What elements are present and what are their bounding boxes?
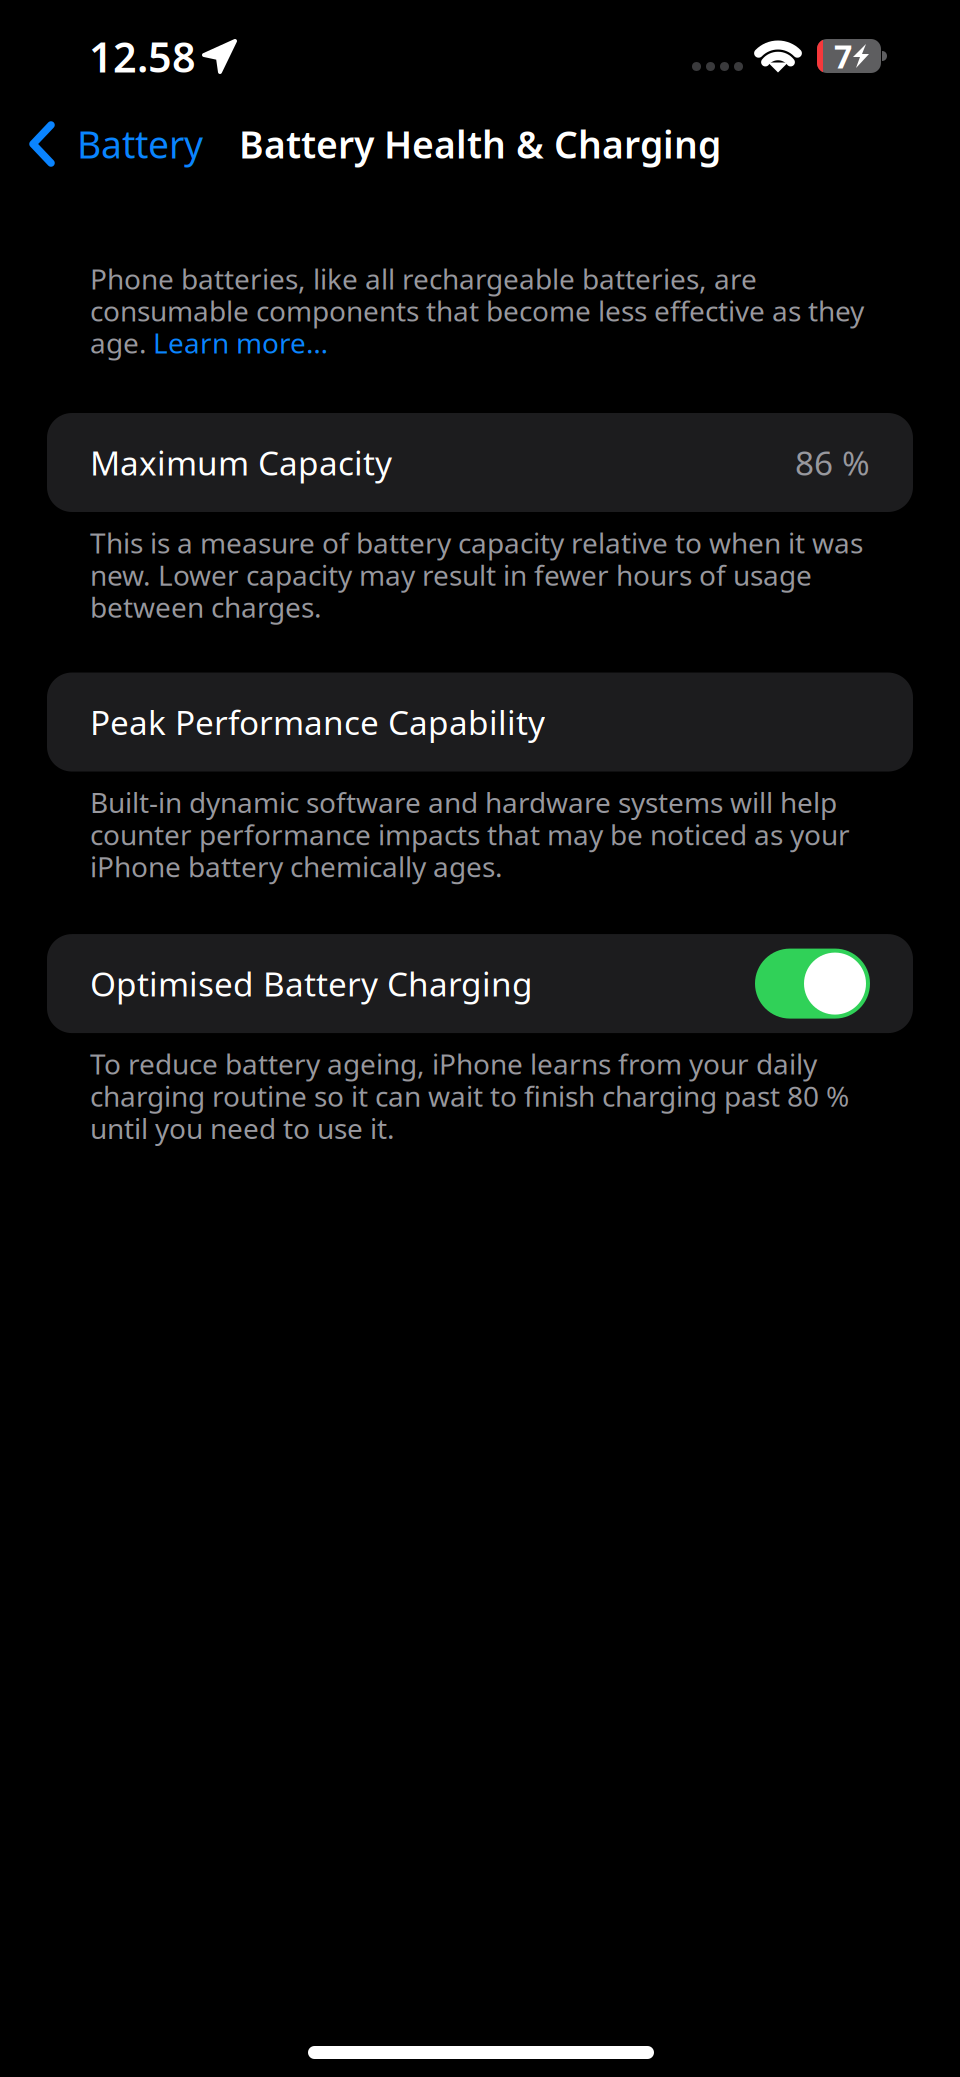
staticText: 12.58 <box>89 29 196 84</box>
button[interactable]: Optimised Battery Charging, on <box>755 949 870 1019</box>
staticText: consumable components that become less e… <box>90 292 864 329</box>
button[interactable]: Learn more… <box>153 324 328 361</box>
button[interactable]: Peak Performance Capability <box>47 672 913 771</box>
button[interactable]: Maximum Capacity <box>47 413 913 512</box>
staticText: age. <box>90 324 147 361</box>
staticText: Battery Health & Charging <box>239 119 721 169</box>
staticText: To reduce battery ageing, iPhone learns … <box>90 1045 849 1147</box>
staticText: This is a measure of battery capacity re… <box>90 524 863 625</box>
staticText: Optimised Battery Charging <box>90 961 533 1006</box>
staticText: Built-in dynamic software and hardware s… <box>90 783 850 885</box>
button[interactable]: Battery <box>0 96 260 192</box>
staticText: Maximum Capacity <box>90 440 392 485</box>
staticText: Battery <box>77 119 203 169</box>
staticText: 7 <box>834 35 852 77</box>
staticText: Peak Performance Capability <box>90 700 545 744</box>
staticText: Learn more… <box>153 324 328 361</box>
staticText: 86 % <box>795 440 870 485</box>
staticText: Phone batteries, like all rechargeable b… <box>90 260 757 297</box>
